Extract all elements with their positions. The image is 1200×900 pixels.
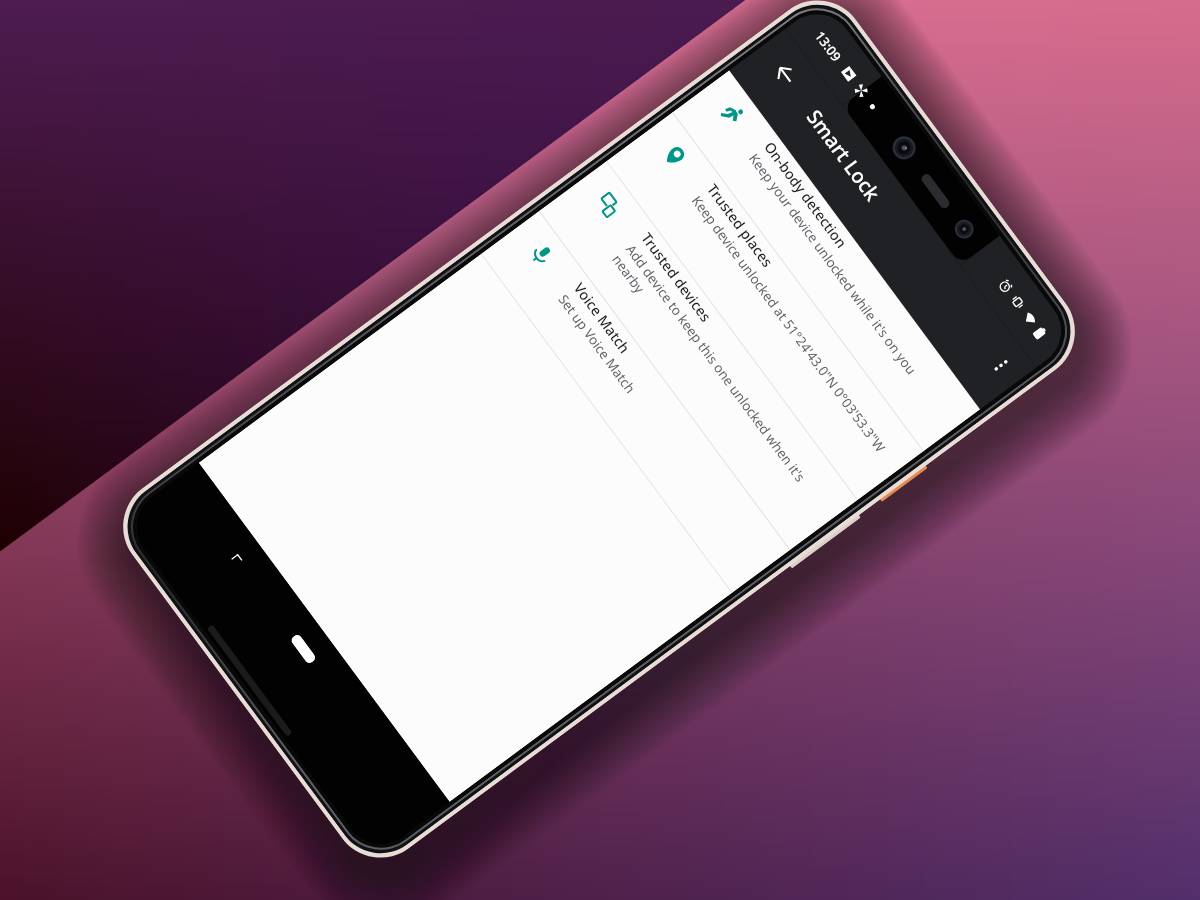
staticText: Smart Lock — [801, 104, 886, 206]
button[interactable]: On-body detection — [672, 70, 980, 452]
button[interactable]: More options — [970, 335, 1032, 396]
button[interactable]: Trusted places — [606, 112, 923, 500]
button[interactable]: Trusted devices — [539, 161, 857, 550]
staticText: Trusted places — [703, 180, 777, 271]
staticText: Keep device unlocked at 51°24'43.0"N 0°0… — [688, 192, 890, 456]
button[interactable]: Voice Match — [481, 211, 790, 593]
staticText: Set up Voice Match — [554, 291, 640, 397]
staticText: Add device to keep this one unlocked whe… — [608, 241, 827, 519]
staticText: 13:09 — [811, 27, 846, 65]
staticText: Keep your device unlocked while it's on … — [745, 150, 921, 378]
staticText: Trusted devices — [637, 229, 715, 325]
staticText: Voice Match — [570, 279, 634, 357]
button[interactable]: Back — [751, 40, 819, 107]
staticText: On-body detection — [760, 138, 852, 252]
